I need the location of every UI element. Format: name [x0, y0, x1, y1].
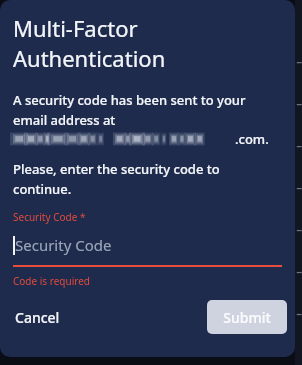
- staticText: Authentication: [13, 43, 166, 73]
- button[interactable]: Security Code: [0, 233, 295, 257]
- staticText: Multi-Factor: [13, 13, 138, 43]
- staticText: Cancel: [15, 308, 60, 327]
- staticText: A security code has been sent to your em…: [13, 91, 246, 129]
- staticText: Security Code: [15, 235, 112, 255]
- staticText: Please, enter the security code to conti…: [13, 160, 220, 198]
- button[interactable]: Submit: [207, 300, 287, 334]
- staticText: .com.: [235, 130, 269, 148]
- button[interactable]: Cancel: [13, 304, 62, 331]
- staticText: Security Code *: [13, 210, 86, 224]
- staticText: Code is required: [13, 274, 90, 288]
- staticText: Submit: [223, 308, 271, 327]
